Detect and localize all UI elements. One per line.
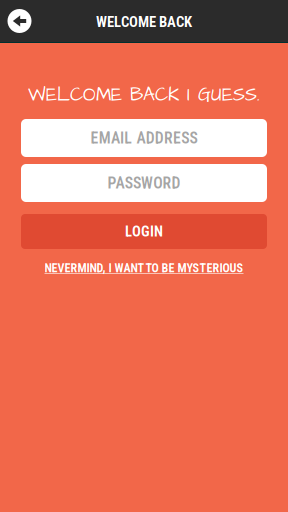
staticText: NEVERMIND, I WANT TO BE MYSTERIOUS	[44, 261, 243, 275]
staticText: PASSWORD	[107, 174, 181, 192]
staticText: WELCOME BACK I GUESS.	[28, 82, 260, 108]
button[interactable]: EMAIL ADDRESS	[21, 119, 267, 157]
staticText: LOGIN	[125, 223, 163, 240]
button[interactable]: NEVERMIND, I WANT TO BE MYSTERIOUS	[44, 261, 243, 275]
button[interactable]: PASSWORD	[21, 164, 267, 202]
button[interactable]: Back	[0, 0, 39, 42]
button[interactable]: LOGIN	[21, 214, 267, 249]
staticText: EMAIL ADDRESS	[91, 129, 197, 147]
staticText: WELCOME BACK	[96, 13, 192, 31]
